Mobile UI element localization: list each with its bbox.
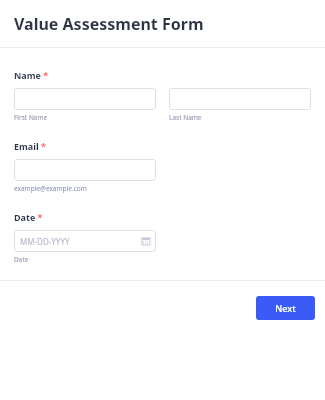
staticText: MM-DD-YYYY <box>20 236 70 247</box>
staticText: Value Assessment Form <box>14 13 204 35</box>
button[interactable]: MM-DD-YYYY <box>14 230 156 252</box>
button[interactable] <box>14 159 156 181</box>
button[interactable] <box>14 88 156 110</box>
staticText: Next <box>275 302 296 314</box>
staticText: Email * <box>14 140 46 152</box>
staticText: First Name <box>14 113 48 122</box>
staticText: Name * <box>14 69 49 81</box>
staticText: Last Name <box>169 113 202 122</box>
staticText: example@example.com <box>14 184 87 193</box>
staticText: Date <box>14 255 29 264</box>
button[interactable]: Next <box>256 296 315 320</box>
staticText: Date * <box>14 211 43 223</box>
button[interactable] <box>169 88 311 110</box>
